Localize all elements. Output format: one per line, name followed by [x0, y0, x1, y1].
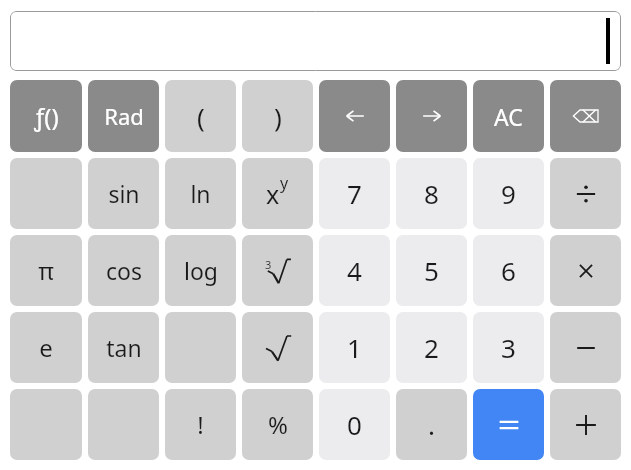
- staticText: .: [428, 407, 435, 442]
- button[interactable]: Move cursor left: [319, 80, 390, 152]
- staticText: 4: [347, 253, 362, 288]
- button[interactable]: Rad: [88, 80, 159, 152]
- button[interactable]: Plus: [550, 389, 621, 460]
- button[interactable]: Backspace: [550, 80, 621, 152]
- staticText: Rad: [104, 101, 144, 131]
- staticText: ln: [190, 178, 211, 209]
- button[interactable]: 9: [473, 158, 544, 229]
- button[interactable]: cos: [88, 235, 159, 306]
- button[interactable]: 5: [396, 235, 467, 306]
- button[interactable]: π: [10, 235, 82, 306]
- button[interactable]: Square root: [242, 312, 313, 383]
- button[interactable]: [10, 11, 621, 71]
- button[interactable]: Cube root: [242, 235, 313, 306]
- button[interactable]: sin: [88, 158, 159, 229]
- button[interactable]: 1: [319, 312, 390, 383]
- button[interactable]: 8: [396, 158, 467, 229]
- staticText: y: [280, 172, 289, 194]
- staticText: (: [197, 99, 205, 134]
- staticText: log: [184, 255, 218, 286]
- staticText: 7: [347, 176, 362, 211]
- staticText: 3: [501, 330, 516, 365]
- staticText: sin: [108, 178, 140, 209]
- staticText: π: [38, 254, 54, 287]
- staticText: %: [268, 408, 288, 441]
- button[interactable]: 0: [319, 389, 390, 460]
- staticText: 1: [347, 330, 362, 365]
- staticText: 2: [424, 330, 439, 365]
- button[interactable]: AC: [473, 80, 544, 152]
- button[interactable]: Equals: [473, 389, 544, 460]
- button[interactable]: Multiply: [550, 235, 621, 306]
- staticText: 3: [265, 257, 272, 272]
- button[interactable]: ): [242, 80, 313, 152]
- staticText: x: [266, 177, 280, 211]
- staticText: ƒ(): [34, 100, 59, 133]
- button[interactable]: 4: [319, 235, 390, 306]
- button[interactable]: !: [165, 389, 236, 460]
- button[interactable]: (: [165, 80, 236, 152]
- staticText: 5: [424, 253, 439, 288]
- button[interactable]: %: [242, 389, 313, 460]
- button[interactable]: Move cursor right: [396, 80, 467, 152]
- staticText: AC: [494, 101, 523, 132]
- button[interactable]: tan: [88, 312, 159, 383]
- button[interactable]: x to the power of y: [242, 158, 313, 229]
- staticText: 8: [424, 176, 439, 211]
- staticText: 0: [347, 407, 362, 442]
- button[interactable]: ln: [165, 158, 236, 229]
- button[interactable]: ƒ(): [10, 80, 82, 152]
- staticText: 9: [501, 176, 516, 211]
- staticText: e: [39, 331, 53, 364]
- button[interactable]: 6: [473, 235, 544, 306]
- staticText: tan: [106, 332, 142, 363]
- staticText: ): [274, 99, 282, 134]
- button[interactable]: 7: [319, 158, 390, 229]
- staticText: !: [197, 408, 204, 441]
- staticText: cos: [106, 255, 142, 286]
- button[interactable]: .: [396, 389, 467, 460]
- button[interactable]: e: [10, 312, 82, 383]
- button[interactable]: 2: [396, 312, 467, 383]
- staticText: 6: [501, 253, 516, 288]
- button[interactable]: Divide: [550, 158, 621, 229]
- button[interactable]: log: [165, 235, 236, 306]
- button[interactable]: Minus: [550, 312, 621, 383]
- button[interactable]: 3: [473, 312, 544, 383]
